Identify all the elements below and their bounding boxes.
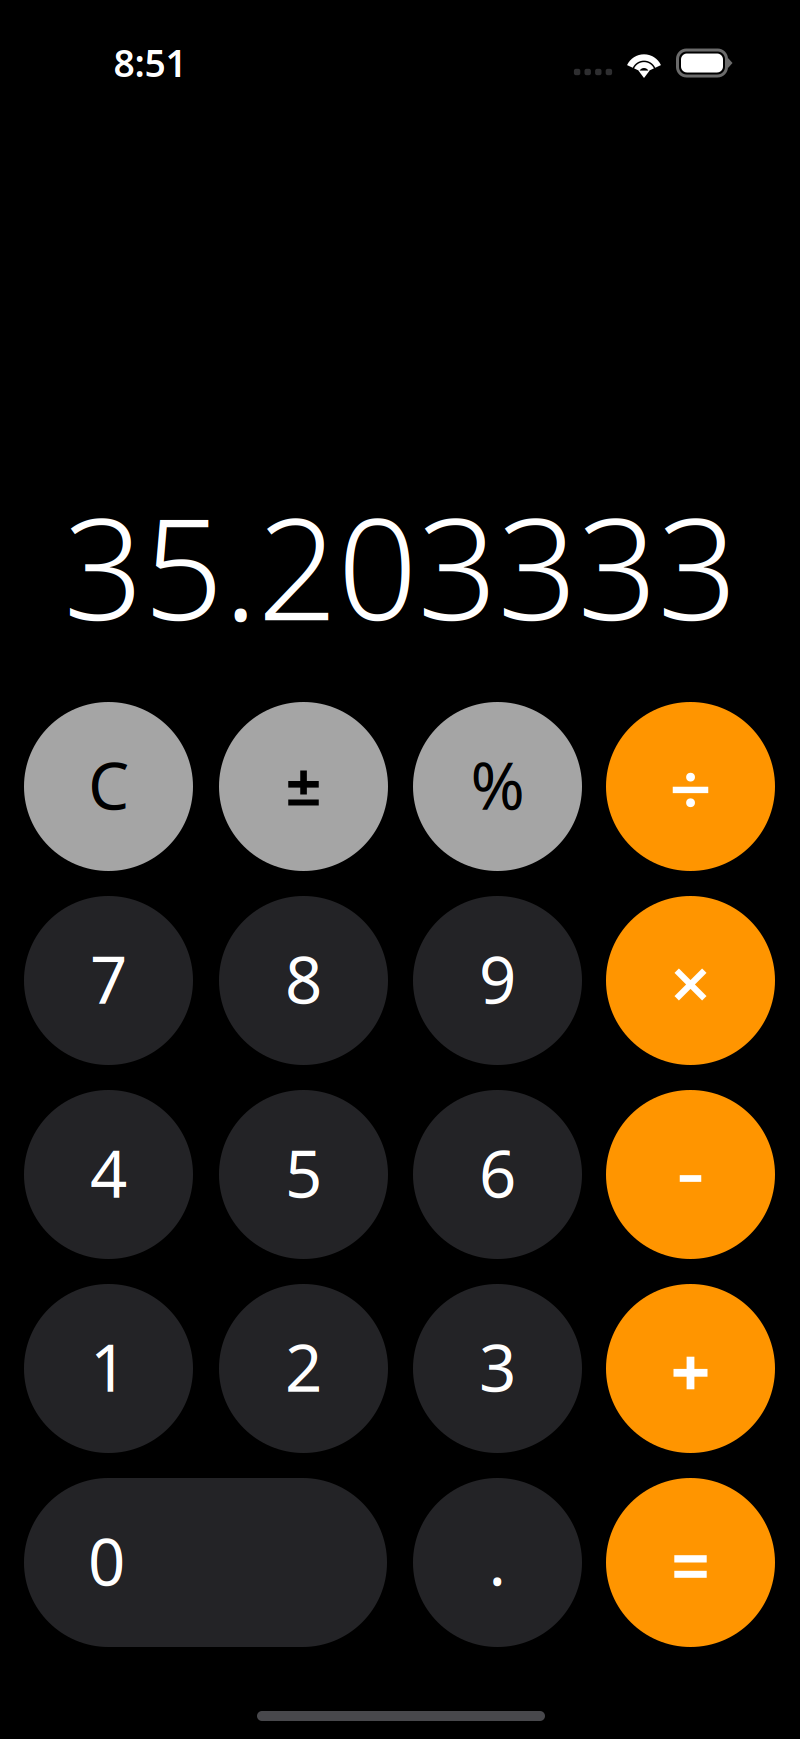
staticText: 2 [285,1323,322,1410]
staticText: 9 [479,935,516,1022]
staticText: 5 [285,1129,322,1216]
staticText: 8:51 [113,38,186,87]
button[interactable]: 5 [219,1090,388,1259]
staticText: 1 [90,1323,127,1410]
staticText: 35.203333 [63,473,737,659]
button[interactable]: Plus [606,1284,775,1453]
button[interactable]: % [413,702,582,871]
staticText: 8 [285,935,322,1022]
button[interactable]: 1 [24,1284,193,1453]
button[interactable]: . [413,1478,582,1647]
button[interactable]: 7 [24,896,193,1065]
button[interactable]: 3 [413,1284,582,1453]
button[interactable]: Divide [606,702,775,871]
staticText: C [88,741,129,828]
staticText: 6 [479,1129,516,1216]
button[interactable]: 8 [219,896,388,1065]
button[interactable]: Plus Minus [219,702,388,871]
button[interactable]: Equals [606,1478,775,1647]
button[interactable]: C [24,702,193,871]
staticText: % [470,741,524,828]
button[interactable]: 0 [24,1478,387,1647]
staticText: 0 [88,1517,125,1604]
button[interactable]: 2 [219,1284,388,1453]
button[interactable]: 9 [413,896,582,1065]
staticText: 3 [479,1323,516,1410]
staticText: 4 [90,1129,127,1216]
button[interactable]: Minus [606,1090,775,1259]
button[interactable]: 4 [24,1090,193,1259]
staticText: 7 [90,935,127,1022]
button[interactable]: 6 [413,1090,582,1259]
staticText: . [488,1517,506,1604]
button[interactable]: Multiply [606,896,775,1065]
